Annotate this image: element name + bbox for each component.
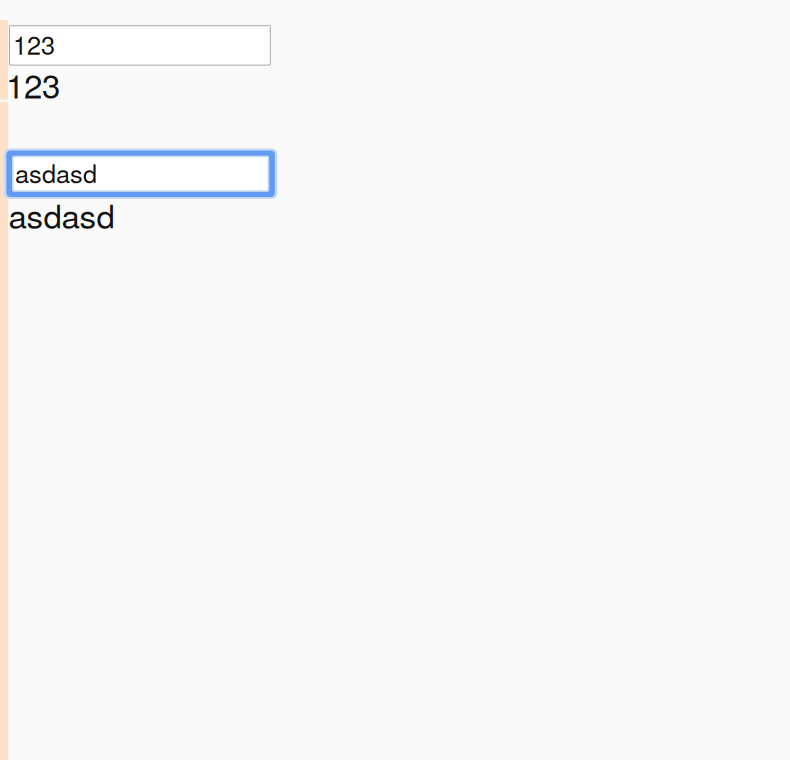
button[interactable]: Text field, focused, asdasd [4,148,277,199]
staticText: asdasd [8,191,114,238]
staticText: 123 [6,60,60,108]
staticText: asdasd [15,154,97,190]
staticText: 123 [13,26,55,62]
button[interactable]: Text field, 123 [9,26,270,65]
